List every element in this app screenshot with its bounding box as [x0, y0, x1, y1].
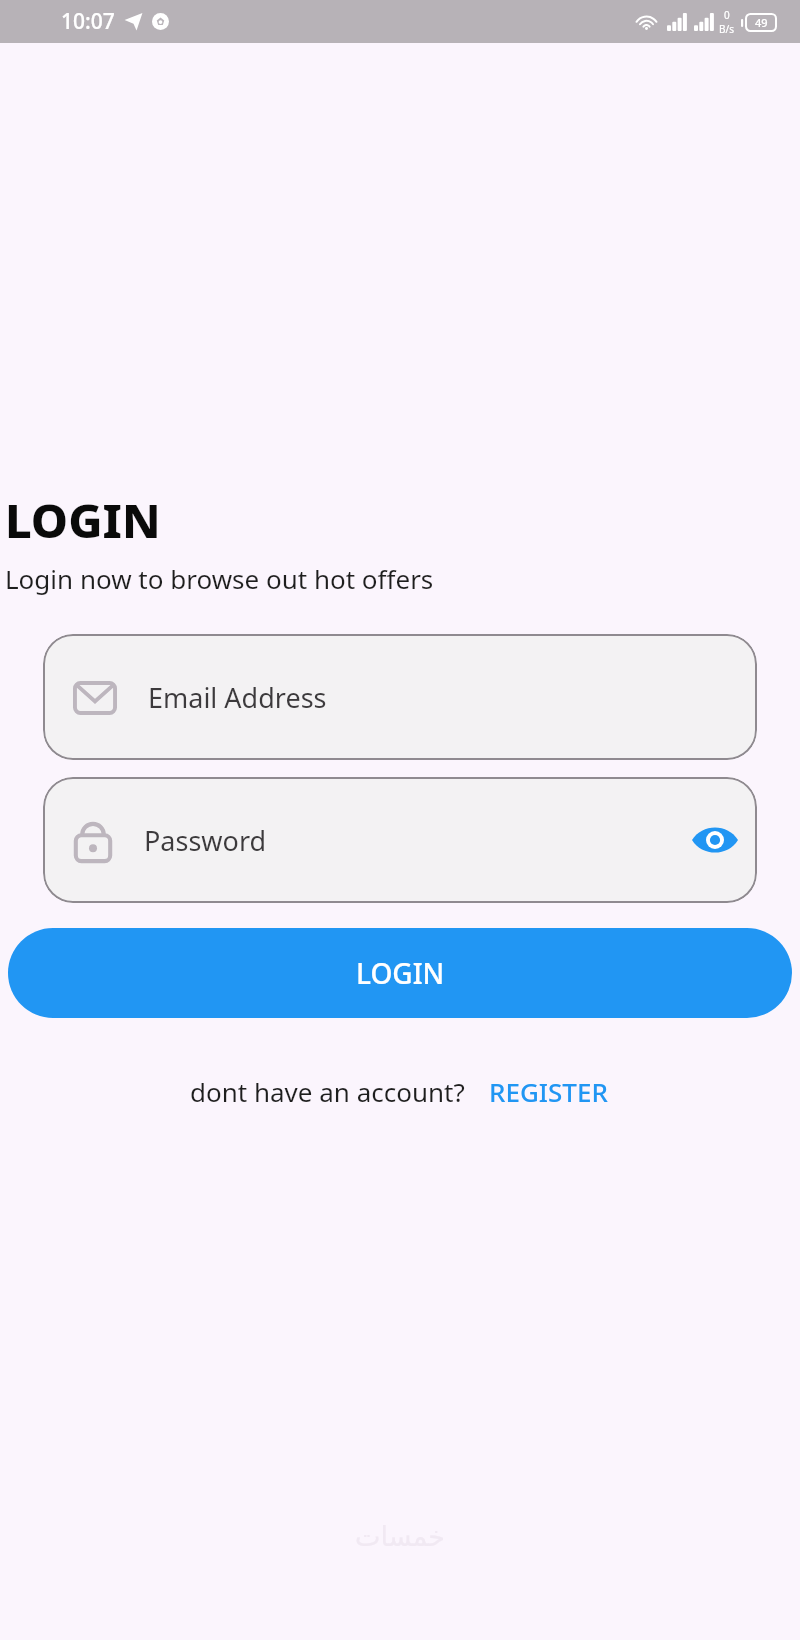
button[interactable]: Password [43, 777, 757, 903]
button[interactable]: REGISTER [487, 1070, 610, 1113]
staticText: 0 [724, 8, 730, 22]
button[interactable]: LOGIN [8, 928, 792, 1018]
button[interactable]: Show password [687, 812, 743, 868]
staticText: خمسات [355, 1521, 446, 1552]
button[interactable]: Email Address [43, 634, 757, 760]
staticText: LOGIN [5, 488, 161, 552]
staticText: 49 [755, 15, 768, 30]
staticText: Email Address [148, 679, 327, 716]
staticText: B/s [719, 22, 735, 36]
staticText: Password [144, 822, 267, 859]
staticText: REGISTER [489, 1074, 608, 1109]
staticText: dont have an account? [190, 1074, 465, 1109]
staticText: Login now to browse out hot offers [5, 561, 434, 596]
staticText: LOGIN [356, 954, 445, 992]
staticText: 10:07 [61, 7, 115, 36]
